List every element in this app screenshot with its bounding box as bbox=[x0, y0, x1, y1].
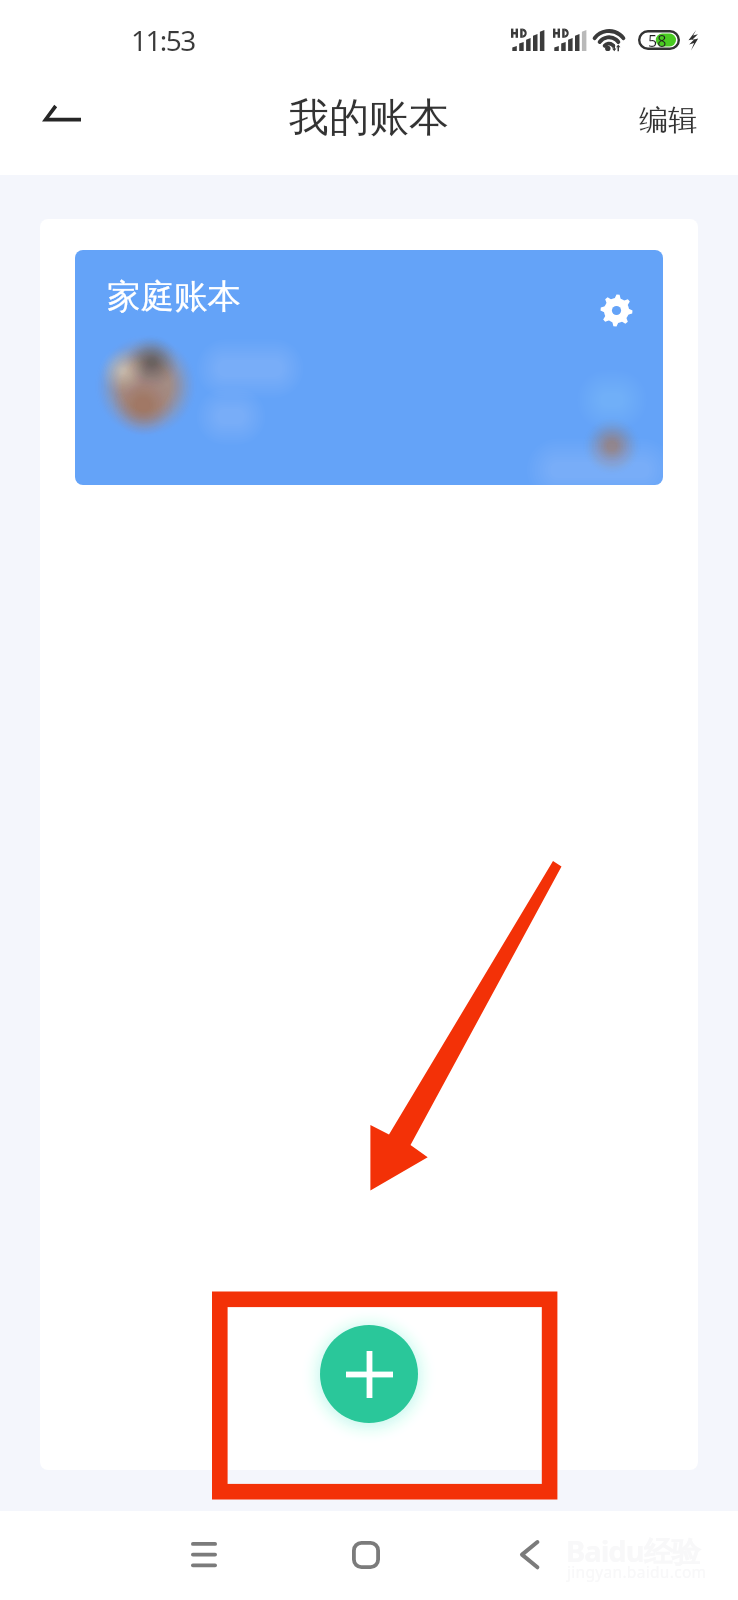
staticText: 58 bbox=[648, 30, 667, 50]
staticText: 11:53 bbox=[131, 21, 195, 59]
button[interactable]: Back bbox=[20, 86, 106, 154]
button[interactable]: 编辑 bbox=[626, 90, 710, 150]
staticText: 我的账本 bbox=[289, 92, 449, 142]
staticText: 编辑 bbox=[639, 102, 697, 139]
button[interactable]: Ledger settings bbox=[594, 288, 639, 333]
button[interactable]: Home bbox=[321, 1511, 411, 1600]
button[interactable]: Add ledger bbox=[320, 1325, 418, 1423]
button[interactable]: 家庭账本 bbox=[75, 250, 663, 485]
staticText: 家庭账本 bbox=[107, 276, 241, 318]
button[interactable]: Back bbox=[483, 1511, 573, 1600]
button[interactable]: Recent apps bbox=[159, 1511, 249, 1600]
staticText: Baidu经验 bbox=[566, 1531, 700, 1571]
